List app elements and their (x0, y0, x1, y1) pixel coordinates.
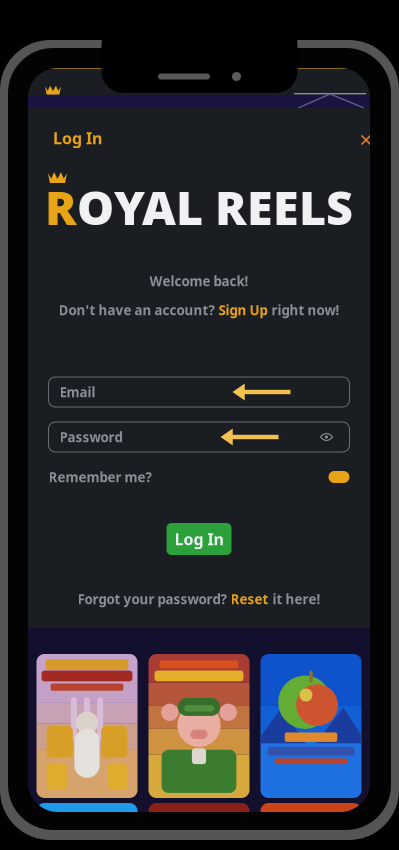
staticText: it here! (272, 590, 320, 608)
staticText: right now! (271, 301, 339, 319)
staticText: Remember me? (48, 468, 151, 486)
button[interactable]: Show password (314, 425, 338, 449)
button[interactable]: Remember me (328, 471, 349, 483)
staticText: Log In (174, 528, 223, 550)
button[interactable]: Gates of Olympus (36, 654, 137, 798)
button[interactable]: Sign Up (218, 301, 267, 319)
staticText: Email (59, 383, 95, 401)
button[interactable]: More Magic Apple (260, 654, 361, 798)
button[interactable]: Log In (166, 523, 231, 555)
staticText: Log In (53, 127, 102, 149)
button[interactable]: Reset (230, 590, 268, 608)
staticText: Forgot your password? (77, 590, 226, 608)
staticText: Sign Up (218, 301, 267, 319)
staticText: Password (59, 428, 122, 446)
staticText: OYAL REELS (77, 176, 353, 238)
staticText: Don't have an account? (58, 301, 214, 319)
staticText: Reset (230, 590, 268, 608)
button[interactable]: Close (354, 128, 378, 152)
button[interactable]: Brick House Bonanza (148, 654, 249, 798)
staticText: Welcome back! (149, 272, 248, 290)
staticText: R (45, 176, 77, 238)
button[interactable]: Log In (53, 127, 113, 149)
